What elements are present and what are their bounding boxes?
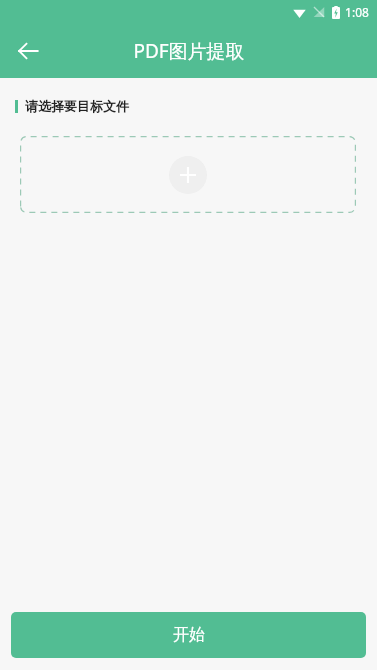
staticText: PDF图片提取	[133, 38, 245, 64]
button[interactable]: 开始	[11, 612, 366, 658]
button[interactable]: Add file	[20, 136, 356, 213]
staticText: 请选择要目标文件	[25, 98, 129, 114]
button[interactable]: Back	[6, 29, 50, 73]
staticText: 1:08	[345, 4, 369, 20]
staticText: 开始	[173, 625, 205, 645]
